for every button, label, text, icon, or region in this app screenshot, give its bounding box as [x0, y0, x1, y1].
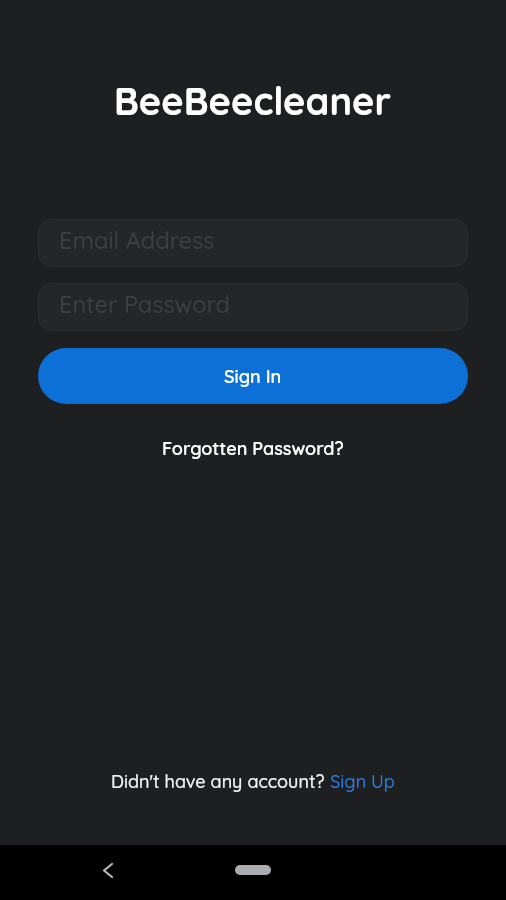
- button[interactable]: Sign Up: [330, 770, 395, 793]
- staticText: Email Address: [59, 225, 215, 254]
- button[interactable]: [235, 865, 271, 875]
- button[interactable]: [92, 854, 124, 886]
- button[interactable]: Forgotten Password?: [162, 435, 344, 461]
- button[interactable]: Email Address: [38, 219, 468, 267]
- staticText: Sign Up: [330, 770, 395, 793]
- button[interactable]: Sign In: [38, 348, 468, 404]
- staticText: Enter Password: [59, 289, 231, 318]
- staticText: Didn't have any account?: [111, 770, 330, 793]
- staticText: BeeBeecleaner: [114, 77, 392, 125]
- staticText: Sign In: [224, 365, 282, 388]
- button[interactable]: Enter Password: [38, 283, 468, 331]
- staticText: Forgotten Password?: [162, 437, 344, 460]
